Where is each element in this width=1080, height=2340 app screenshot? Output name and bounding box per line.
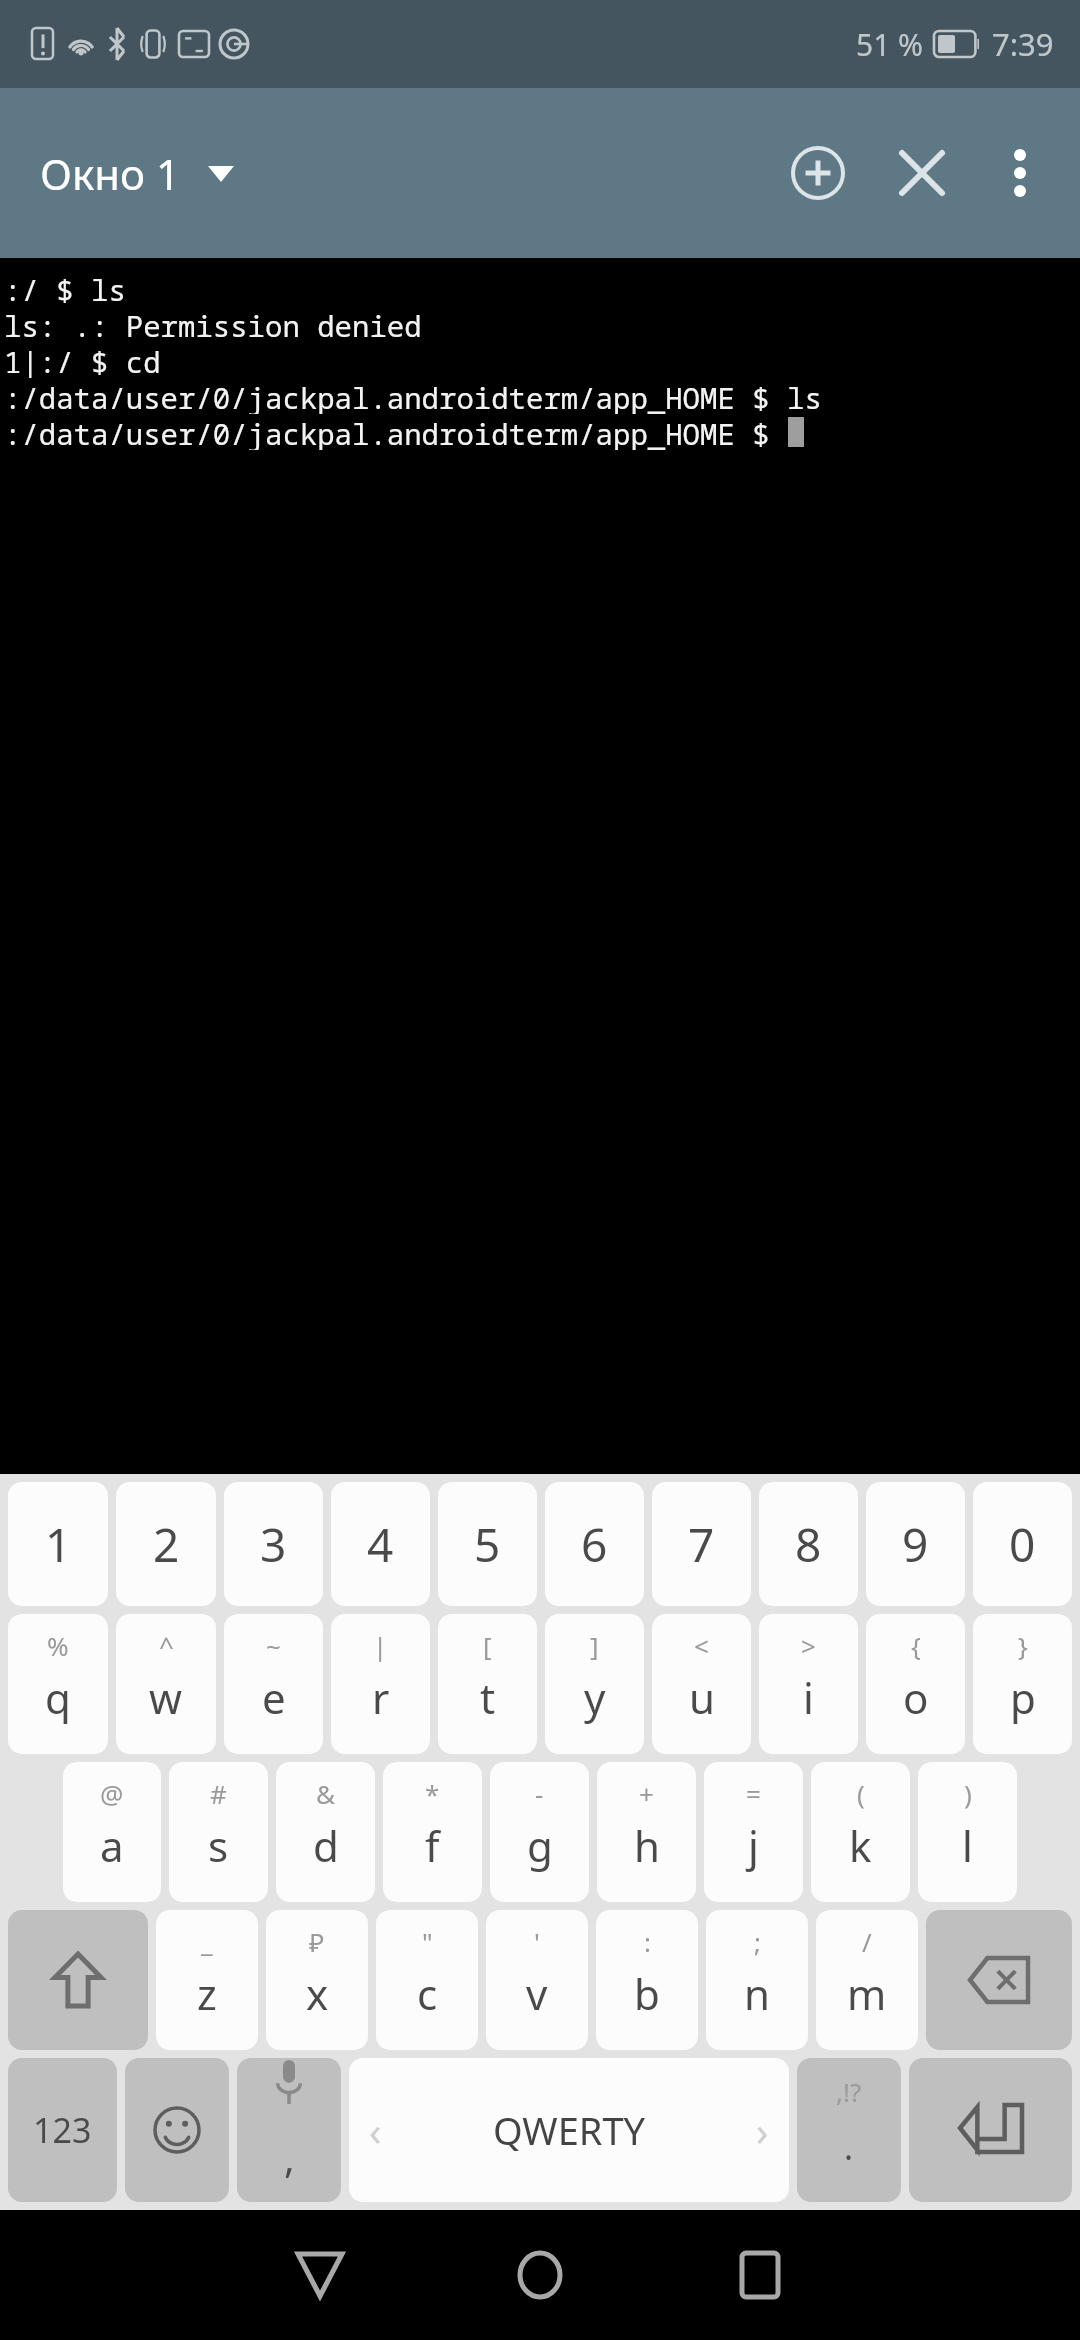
- staticText: f: [425, 1817, 440, 1874]
- staticText: b: [634, 1965, 660, 2022]
- button[interactable]: |: [331, 1614, 430, 1754]
- button[interactable]: +: [597, 1762, 696, 1902]
- button[interactable]: {: [866, 1614, 965, 1754]
- staticText: g: [527, 1817, 553, 1874]
- staticText: d: [313, 1817, 339, 1874]
- staticText: ,: [284, 2130, 295, 2184]
- staticText: }: [1018, 1628, 1028, 1663]
- staticText: ): [964, 1776, 972, 1811]
- staticText: ': [534, 1924, 540, 1959]
- button[interactable]: Shift: [8, 1910, 148, 2050]
- staticText: 3: [260, 1513, 287, 1576]
- button[interactable]: Numbers: [8, 2058, 117, 2202]
- button[interactable]: _: [156, 1910, 258, 2050]
- staticText: #: [210, 1776, 227, 1811]
- staticText: %: [47, 1628, 69, 1663]
- staticText: -: [535, 1776, 544, 1811]
- staticText: 0: [1009, 1513, 1036, 1576]
- button[interactable]: Back: [230, 2210, 410, 2340]
- button[interactable]: }: [973, 1614, 1072, 1754]
- button[interactable]: Recents: [670, 2210, 850, 2340]
- button[interactable]: ): [918, 1762, 1017, 1902]
- button[interactable]: 9: [866, 1482, 965, 1606]
- staticText: ~: [266, 1628, 281, 1663]
- button[interactable]: Backspace: [926, 1910, 1072, 2050]
- staticText: _: [201, 1924, 213, 1959]
- staticText: 4: [367, 1513, 394, 1576]
- button[interactable]: Punctuation: [797, 2058, 901, 2202]
- staticText: r: [372, 1669, 390, 1726]
- staticText: v: [526, 1965, 548, 2022]
- staticText: z: [197, 1965, 217, 2022]
- button[interactable]: Emoji: [125, 2058, 229, 2202]
- staticText: x: [306, 1965, 329, 2022]
- button[interactable]: -: [490, 1762, 589, 1902]
- staticText: 1|:/ $ cd: [4, 342, 161, 378]
- button[interactable]: #: [169, 1762, 268, 1902]
- button[interactable]: 5: [438, 1482, 537, 1606]
- button[interactable]: Окно 1: [36, 131, 238, 216]
- staticText: 1: [45, 1513, 72, 1576]
- staticText: ‹: [369, 2103, 382, 2157]
- button[interactable]: :/ $ ls: [0, 258, 1080, 1474]
- button[interactable]: 8: [759, 1482, 858, 1606]
- staticText: |: [373, 1628, 388, 1663]
- staticText: i: [803, 1669, 814, 1726]
- button[interactable]: *: [383, 1762, 482, 1902]
- staticText: s: [208, 1817, 229, 1874]
- button[interactable]: More options: [974, 127, 1066, 219]
- button[interactable]: %: [8, 1614, 108, 1754]
- staticText: l: [962, 1817, 973, 1874]
- staticText: 51 %: [856, 24, 924, 65]
- staticText: 2: [153, 1513, 180, 1576]
- staticText: c: [417, 1965, 438, 2022]
- button[interactable]: :: [596, 1910, 698, 2050]
- button[interactable]: (: [811, 1762, 910, 1902]
- staticText: t: [480, 1669, 496, 1726]
- staticText: q: [45, 1669, 71, 1726]
- staticText: 123: [33, 2107, 92, 2153]
- button[interactable]: @: [63, 1762, 161, 1902]
- button[interactable]: Close window: [870, 121, 974, 225]
- staticText: :/data/user/0/jackpal.androidterm/app_HO…: [4, 414, 788, 450]
- button[interactable]: ;: [706, 1910, 808, 2050]
- staticText: +: [639, 1776, 654, 1811]
- button[interactable]: /: [816, 1910, 918, 2050]
- button[interactable]: ": [376, 1910, 478, 2050]
- button[interactable]: 1: [8, 1482, 108, 1606]
- button[interactable]: 6: [545, 1482, 644, 1606]
- staticText: [: [483, 1628, 492, 1663]
- button[interactable]: Voice input: [237, 2058, 341, 2202]
- staticText: p: [1010, 1669, 1036, 1726]
- button[interactable]: 7: [652, 1482, 751, 1606]
- button[interactable]: ₽: [266, 1910, 368, 2050]
- button[interactable]: ]: [545, 1614, 644, 1754]
- staticText: ": [422, 1924, 433, 1959]
- staticText: *: [425, 1776, 440, 1811]
- staticText: :/data/user/0/jackpal.androidterm/app_HO…: [4, 378, 822, 414]
- staticText: j: [748, 1817, 759, 1874]
- button[interactable]: &: [276, 1762, 375, 1902]
- button[interactable]: [: [438, 1614, 537, 1754]
- button[interactable]: ^: [116, 1614, 216, 1754]
- staticText: n: [744, 1965, 770, 2022]
- staticText: h: [634, 1817, 660, 1874]
- button[interactable]: 3: [224, 1482, 323, 1606]
- button[interactable]: 2: [116, 1482, 216, 1606]
- staticText: ₽: [309, 1924, 325, 1959]
- button[interactable]: <: [652, 1614, 751, 1754]
- staticText: (: [857, 1776, 865, 1811]
- button[interactable]: >: [759, 1614, 858, 1754]
- button[interactable]: Home: [450, 2210, 630, 2340]
- staticText: ;: [754, 1924, 761, 1959]
- button[interactable]: =: [704, 1762, 803, 1902]
- button[interactable]: ‹: [349, 2058, 789, 2202]
- button[interactable]: ': [486, 1910, 588, 2050]
- button[interactable]: 4: [331, 1482, 430, 1606]
- button[interactable]: Enter: [909, 2058, 1072, 2202]
- button[interactable]: New window: [766, 121, 870, 225]
- staticText: 5: [474, 1513, 501, 1576]
- staticText: u: [689, 1669, 715, 1726]
- button[interactable]: 0: [973, 1482, 1072, 1606]
- button[interactable]: ~: [224, 1614, 323, 1754]
